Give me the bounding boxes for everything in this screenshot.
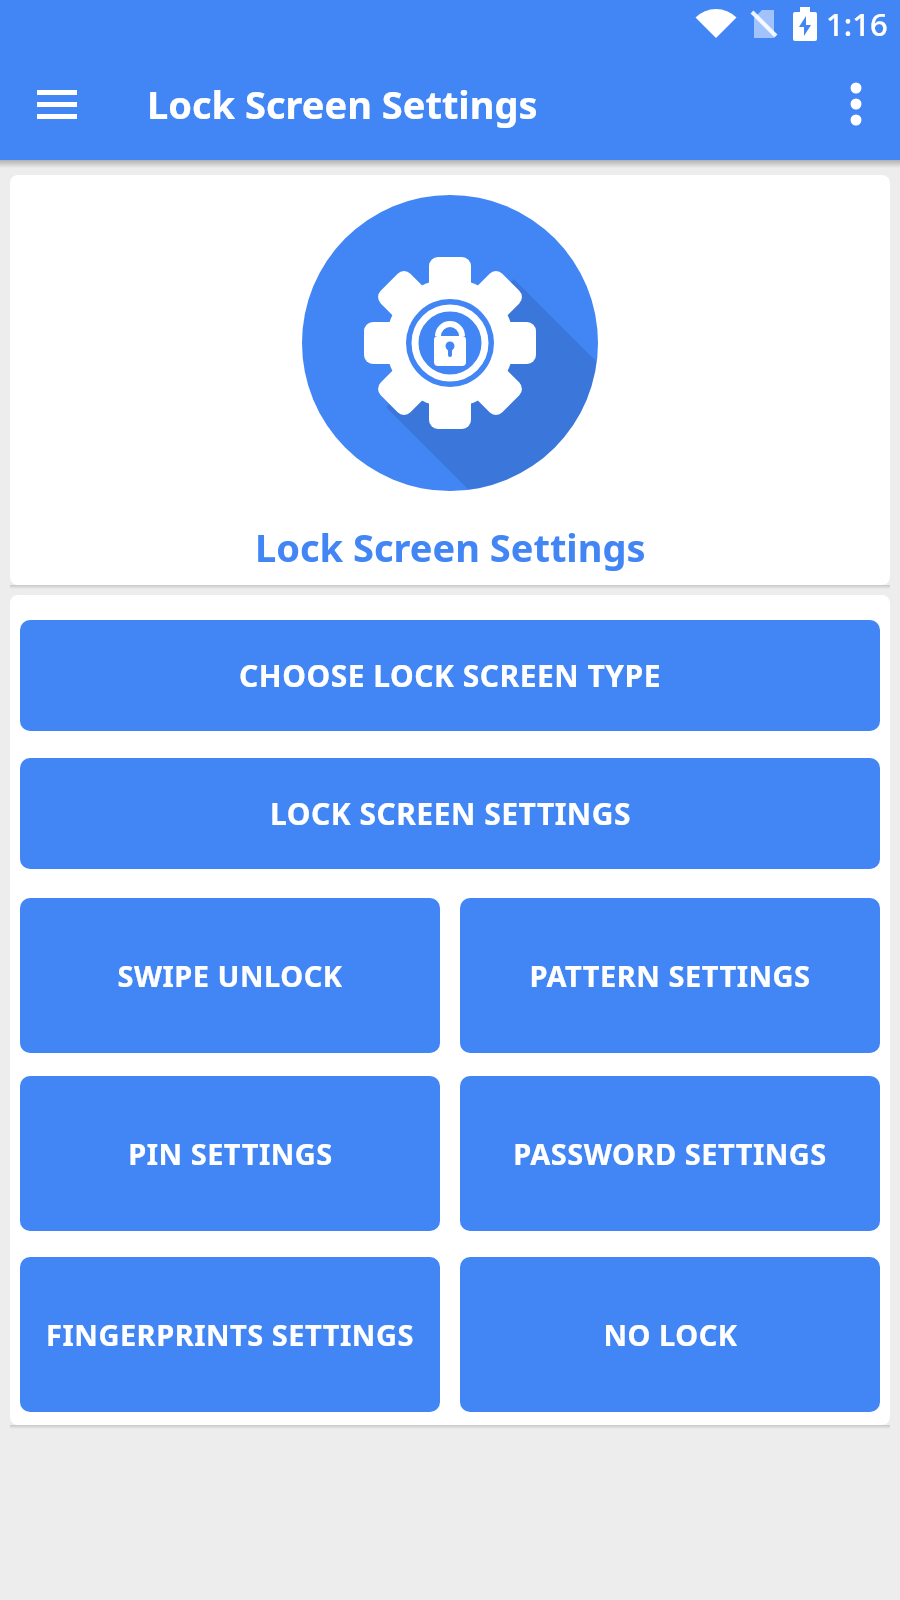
staticText: Lock Screen Settings xyxy=(255,521,646,573)
staticText: PATTERN SETTINGS xyxy=(529,956,811,995)
staticText: CHOOSE LOCK SCREEN TYPE xyxy=(239,655,661,696)
button[interactable]: PIN SETTINGS xyxy=(20,1076,440,1231)
staticText: NO LOCK xyxy=(603,1315,738,1354)
button[interactable]: FINGERPRINTS SETTINGS xyxy=(20,1257,440,1412)
button[interactable] xyxy=(824,72,888,136)
button[interactable]: CHOOSE LOCK SCREEN TYPE xyxy=(20,620,880,731)
staticText: 1:16 xyxy=(826,3,888,45)
staticText: FINGERPRINTS SETTINGS xyxy=(46,1315,414,1354)
staticText: SWIPE UNLOCK xyxy=(117,956,343,995)
button[interactable]: SWIPE UNLOCK xyxy=(20,898,440,1053)
staticText: LOCK SCREEN SETTINGS xyxy=(270,793,631,834)
staticText: PASSWORD SETTINGS xyxy=(513,1134,827,1173)
staticText: PIN SETTINGS xyxy=(128,1134,333,1173)
button[interactable] xyxy=(19,66,95,142)
button[interactable]: PASSWORD SETTINGS xyxy=(460,1076,880,1231)
button[interactable]: LOCK SCREEN SETTINGS xyxy=(20,758,880,869)
staticText: Lock Screen Settings xyxy=(147,78,538,130)
button[interactable]: PATTERN SETTINGS xyxy=(460,898,880,1053)
button[interactable]: NO LOCK xyxy=(460,1257,880,1412)
